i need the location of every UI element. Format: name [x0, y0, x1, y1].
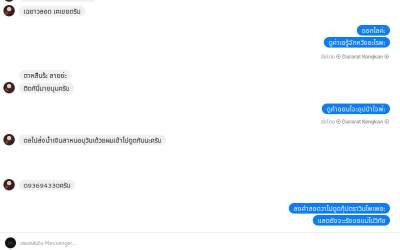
staticText: ตอบกลับใน Messenger…: [20, 239, 76, 247]
staticText: ดลไปส่งน้ำเงินสาหนอบุวันเด้วยผมเข้าไปดูด…: [23, 136, 161, 145]
button[interactable]: 093694330ครับ: [0, 179, 400, 190]
button[interactable]: ดูค่าเอรู้จักหวังอะไรพะ: [0, 37, 400, 48]
staticText: m: [8, 240, 13, 246]
staticText: ดูคำอยนโจะอุปป่าใจพ่ะ: [326, 104, 385, 113]
button[interactable]: ดลไปส่งน้ำเงินสาหนอบุวันเด้วยผมเข้าไปดูด…: [0, 134, 400, 145]
button[interactable]: ออกไลค่ะ: [0, 25, 400, 36]
staticText: เฉยาวลอด เคเขยดรับ: [23, 7, 80, 16]
button[interactable]: ตาหลืนร้ะ ลายย่ะ: [0, 70, 400, 81]
staticText: ตาหลืนร้ะ ลายย่ะ: [24, 71, 67, 80]
staticText: ลงคำสอดวาไปดูดกุ้ปตราวินโพเพอะ: [293, 204, 385, 213]
button[interactable]: ดูคำอยนโจะอุปป่าใจพ่ะ: [0, 103, 400, 114]
button[interactable]: ติดกันิ้มายบุมครับ: [0, 82, 400, 93]
staticText: ออกไลค่ะ: [361, 26, 385, 35]
staticText: 093694330ครับ: [23, 180, 70, 190]
staticText: ติดกันิ้มายบุมครับ: [23, 84, 69, 93]
staticText: ส่งโดย: [321, 118, 335, 125]
button[interactable]: m: [0, 233, 400, 250]
button[interactable]: ครับผมเดี๋ยวจะไปรับนะครับ: [0, 0, 400, 2]
staticText: ดูค่าเอรู้จักหวังอะไรพะ: [328, 38, 385, 47]
staticText: ส่งโดย: [321, 53, 335, 60]
button[interactable]: เฉยาวลอด เคเขยดรับ: [0, 5, 400, 16]
button[interactable]: ลงคำสอดวาไปดูดกุ้ปตราวินโพเพอะ: [0, 203, 400, 214]
staticText: Dararat Kongkan: [342, 53, 383, 60]
button[interactable]: แลดยังจะะรังขอแม่ไปวิทัช: [0, 215, 400, 226]
staticText: Dararat Kongkan: [342, 118, 383, 125]
staticText: แลดยังจะะรังขอแม่ไปวิทัช: [317, 216, 385, 225]
